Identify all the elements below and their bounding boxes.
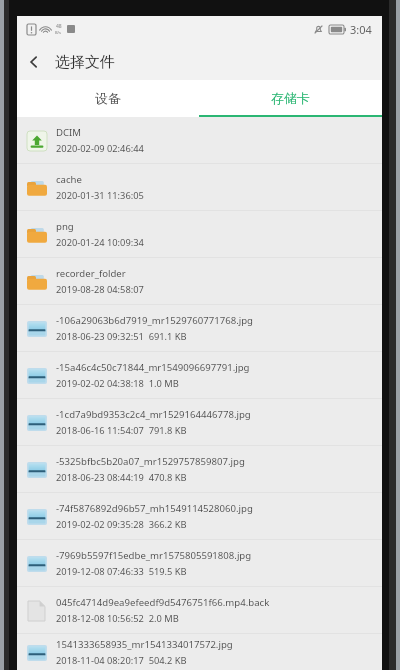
button[interactable]: recorder_folder — [17, 258, 382, 304]
button[interactable]: -5325bfbc5b20a07_mr1529757859807.jpg — [17, 446, 382, 492]
staticText: 48 — [56, 23, 62, 30]
staticText: 2018-06-23 08:44:19 470.8 KB — [56, 471, 187, 484]
staticText: 1541333658935_mr1541334017572.jpg — [56, 638, 233, 651]
staticText: cache — [56, 173, 82, 186]
staticText: 选择文件 — [55, 53, 115, 72]
button[interactable]: -15a46c4c50c71844_mr1549096697791.jpg — [17, 352, 382, 398]
staticText: 2020-01-31 11:36:05 — [56, 189, 144, 202]
button[interactable]: -1cd7a9bd9353c2c4_mr1529164446778.jpg — [17, 399, 382, 445]
button[interactable]: 1541333658935_mr1541334017572.jpg — [17, 634, 382, 670]
staticText: 045fc4714d9ea9efeedf9d5476751f66.mp4.bac… — [56, 596, 270, 609]
staticText: 2018-12-08 10:56:52 2.0 MB — [56, 612, 179, 625]
staticText: 2020-01-24 10:09:34 — [56, 236, 144, 249]
staticText: png — [56, 220, 74, 233]
button[interactable]: 存储卡 — [199, 80, 382, 115]
staticText: 2018-06-16 11:54:07 791.8 KB — [56, 424, 187, 437]
button[interactable]: 设备 — [17, 80, 199, 115]
staticText: 2019-02-02 09:35:28 366.2 KB — [56, 518, 187, 531]
button[interactable]: cache — [17, 164, 382, 210]
staticText: 设备 — [95, 90, 121, 106]
button[interactable]: png — [17, 211, 382, 257]
staticText: recorder_folder — [56, 267, 126, 280]
staticText: 3:04 — [350, 22, 372, 37]
staticText: 2018-06-23 09:32:51 691.1 KB — [56, 330, 187, 343]
button[interactable]: 045fc4714d9ea9efeedf9d5476751f66.mp4.bac… — [17, 587, 382, 633]
staticText: 2018-11-04 08:20:17 504.2 KB — [56, 654, 187, 667]
staticText: -74f5876892d96b57_mh1549114528060.jpg — [56, 502, 253, 515]
staticText: DCIM — [56, 126, 82, 139]
button[interactable]: DCIM — [17, 117, 382, 163]
staticText: 2019-12-08 07:46:33 519.5 KB — [56, 565, 187, 578]
staticText: -5325bfbc5b20a07_mr1529757859807.jpg — [56, 455, 245, 468]
staticText: -1cd7a9bd9353c2c4_mr1529164446778.jpg — [56, 408, 251, 421]
button[interactable]: Back — [17, 45, 51, 79]
button[interactable]: -7969b5597f15edbe_mr1575805591808.jpg — [17, 540, 382, 586]
staticText: 2019-02-02 04:38:18 1.0 MB — [56, 377, 179, 390]
staticText: 存储卡 — [271, 90, 310, 106]
button[interactable]: -106a29063b6d7919_mr1529760771768.jpg — [17, 305, 382, 351]
button[interactable]: -74f5876892d96b57_mh1549114528060.jpg — [17, 493, 382, 539]
staticText: -7969b5597f15edbe_mr1575805591808.jpg — [56, 549, 252, 562]
staticText: -106a29063b6d7919_mr1529760771768.jpg — [56, 314, 253, 327]
staticText: -15a46c4c50c71844_mr1549096697791.jpg — [56, 361, 250, 374]
staticText: B/s — [55, 30, 62, 35]
staticText: 2020-02-09 02:46:44 — [56, 142, 144, 155]
staticText: 2019-08-28 04:58:07 — [56, 283, 144, 296]
